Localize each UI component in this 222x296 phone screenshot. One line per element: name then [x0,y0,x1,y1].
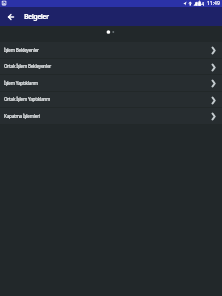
button[interactable]: Back [0,7,21,26]
button[interactable]: İşlem Bekleyenler [0,42,222,59]
staticText: Belgeler [24,12,49,22]
staticText: İşlem Bekleyenler [4,47,39,53]
button[interactable]: Ortak İşlem Yaptıklarım [0,92,222,108]
button[interactable]: Kapatma İşlemleri [0,108,222,125]
staticText: Ortak İşlem Yaptıklarım [4,96,51,102]
staticText: İşlem Yaptıklarım [4,80,38,86]
button[interactable]: Ortak İşlem Bekleyenler [0,59,222,75]
staticText: 11:49 [207,0,220,7]
staticText: Ortak İşlem Bekleyenler [4,63,51,69]
staticText: %64 [195,1,204,7]
button[interactable]: İşlem Yaptıklarım [0,75,222,92]
staticText: Kapatma İşlemleri [4,113,40,119]
